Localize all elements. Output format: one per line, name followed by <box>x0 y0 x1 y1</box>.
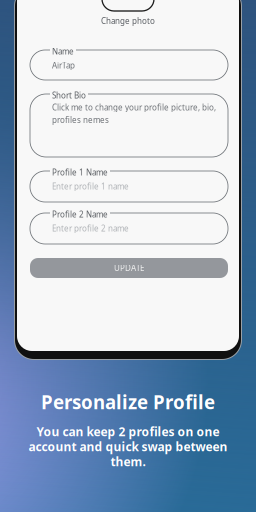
staticText: You can keep 2 profiles on one <box>36 423 219 439</box>
button[interactable]: Profile 2 Name <box>30 213 228 244</box>
staticText: profiles nemes <box>52 115 109 125</box>
staticText: Profile 2 Name <box>52 209 108 220</box>
staticText: Change photo <box>101 16 155 26</box>
button[interactable]: Change photo <box>83 16 173 26</box>
button[interactable]: UPDATE <box>30 258 228 278</box>
button[interactable]: Short Bio <box>30 94 228 157</box>
button[interactable]: Name <box>30 50 228 80</box>
staticText: account and quick swap between <box>28 438 227 454</box>
staticText: AirTap <box>52 60 75 71</box>
staticText: them. <box>110 453 145 469</box>
staticText: Short Bio <box>52 90 86 101</box>
staticText: Profile 1 Name <box>52 167 108 178</box>
button[interactable]: Profile 1 Name <box>30 171 228 202</box>
staticText: Name <box>52 46 74 57</box>
staticText: Personalize Profile <box>41 390 215 414</box>
staticText: Click me to change your profile picture,… <box>52 102 216 113</box>
staticText: Enter profile 2 name <box>52 223 129 234</box>
staticText: Enter profile 1 name <box>52 181 129 192</box>
staticText: UPDATE <box>114 263 144 273</box>
